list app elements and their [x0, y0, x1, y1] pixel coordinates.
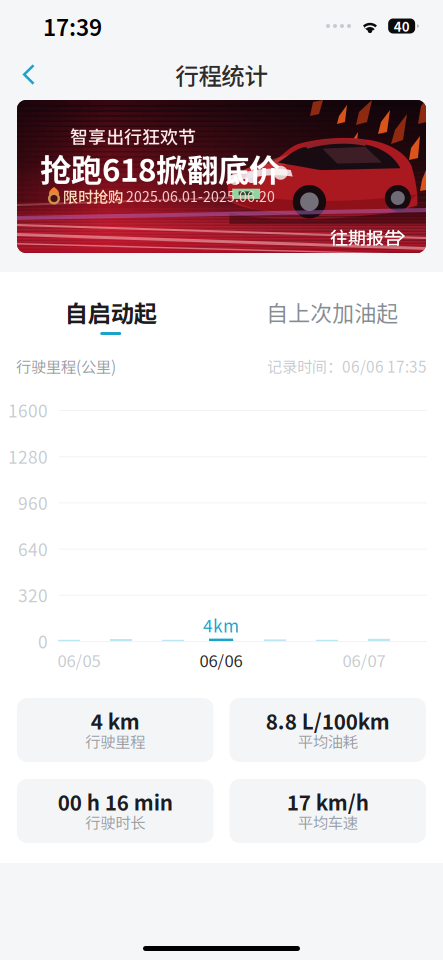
staticText: 行驶时长 [85, 811, 145, 833]
staticText: 行驶里程(公里) [16, 355, 116, 377]
staticText: 320 [18, 582, 48, 607]
staticText: 4km [203, 612, 239, 638]
staticText: 00 h 16 min [58, 786, 173, 816]
staticText: 8.8 L/100km [266, 705, 390, 735]
staticText: 平均车速 [298, 811, 358, 833]
button[interactable]: 智享出行狂欢节 [0, 97, 443, 253]
staticText: 自启动起 [65, 295, 157, 329]
staticText: 限时抢购 [63, 185, 123, 207]
staticText: 2025.06.01-2025.06.20 [126, 186, 275, 206]
staticText: 1600 [8, 397, 48, 423]
staticText: 往期报告 [330, 224, 402, 250]
staticText: 行驶里程 [85, 730, 145, 752]
staticText: 40 [394, 16, 410, 36]
staticText: 06/05 [57, 648, 100, 672]
staticText: 17:39 [43, 10, 102, 42]
button[interactable]: Back [0, 54, 51, 95]
staticText: 自上次加油起 [266, 296, 398, 328]
staticText: 17 km/h [287, 786, 369, 816]
staticText: 行程统计 [175, 58, 267, 91]
staticText: 06/06 [199, 648, 242, 672]
staticText: 640 [18, 536, 48, 561]
staticText: 06/07 [342, 648, 385, 672]
staticText: 智享出行狂欢节 [70, 123, 196, 149]
staticText: 4 km [91, 705, 140, 735]
staticText: 平均油耗 [298, 730, 358, 752]
staticText: 0 [38, 628, 48, 654]
staticText: 1280 [8, 444, 48, 469]
staticText: 记录时间：06/06 17:35 [267, 355, 427, 377]
staticText: 抢跑618掀翻底价 [40, 145, 280, 191]
button[interactable]: 自启动起 [0, 272, 221, 352]
staticText: 960 [18, 490, 48, 515]
button[interactable]: 自上次加油起 [221, 272, 443, 352]
